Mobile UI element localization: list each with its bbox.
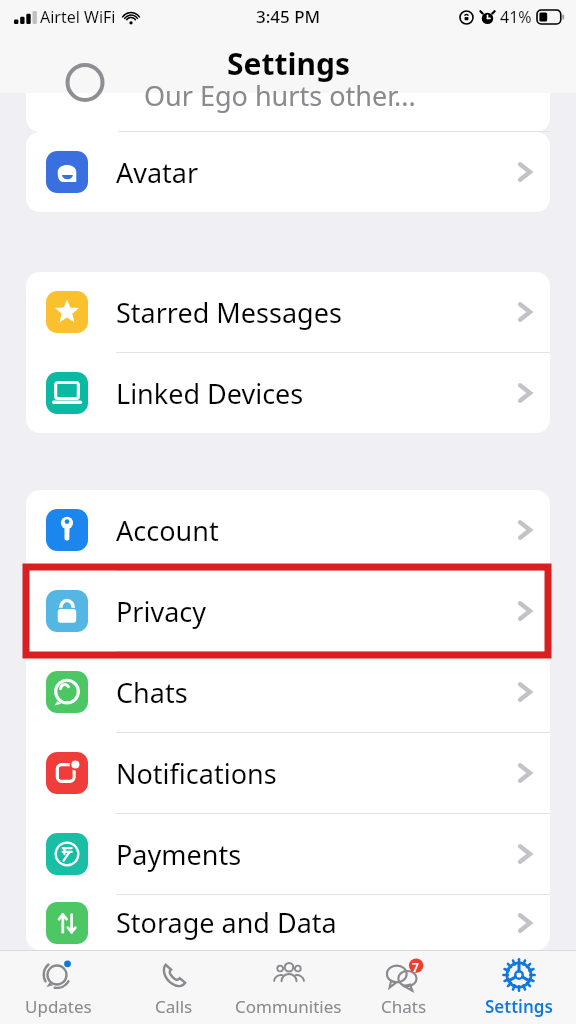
staticText: Chats xyxy=(381,995,427,1018)
button[interactable]: Avatar xyxy=(26,132,550,212)
staticText: Account xyxy=(116,512,219,549)
staticText: Our Ego hurts other... xyxy=(144,77,416,114)
staticText: 41% xyxy=(500,6,532,28)
staticText: Communities xyxy=(235,995,342,1018)
button[interactable]: Privacy xyxy=(26,571,550,652)
staticText: Calls xyxy=(155,995,193,1018)
staticText: 3:45 PM xyxy=(256,5,321,28)
button[interactable]: Our Ego hurts other... xyxy=(26,93,550,132)
staticText: Airtel WiFi xyxy=(40,6,116,28)
button[interactable]: Chats xyxy=(26,652,550,733)
button[interactable]: Calls xyxy=(116,951,231,1024)
staticText: Linked Devices xyxy=(116,375,304,412)
staticText: Avatar xyxy=(116,154,199,191)
staticText: Updates xyxy=(25,995,92,1018)
staticText: Starred Messages xyxy=(116,294,342,331)
staticText: Payments xyxy=(116,836,242,873)
button[interactable]: Account xyxy=(26,490,550,571)
staticText: Chats xyxy=(116,674,188,711)
button[interactable]: Linked Devices xyxy=(26,353,550,433)
staticText: Storage and Data xyxy=(116,904,337,941)
staticText: Privacy xyxy=(116,593,207,630)
button[interactable]: Notifications xyxy=(26,733,550,814)
button[interactable]: Starred Messages xyxy=(26,272,550,353)
staticText: 7 xyxy=(412,959,419,973)
button[interactable]: Communities xyxy=(231,951,346,1024)
button[interactable]: Storage and Data xyxy=(26,895,550,950)
button[interactable]: Payments xyxy=(26,814,550,895)
staticText: Settings xyxy=(227,43,350,84)
staticText: Notifications xyxy=(116,755,277,792)
button[interactable]: Updates xyxy=(0,951,116,1024)
button[interactable]: 7 xyxy=(346,951,461,1024)
staticText: Settings xyxy=(485,995,553,1018)
button[interactable]: Settings xyxy=(461,951,576,1024)
